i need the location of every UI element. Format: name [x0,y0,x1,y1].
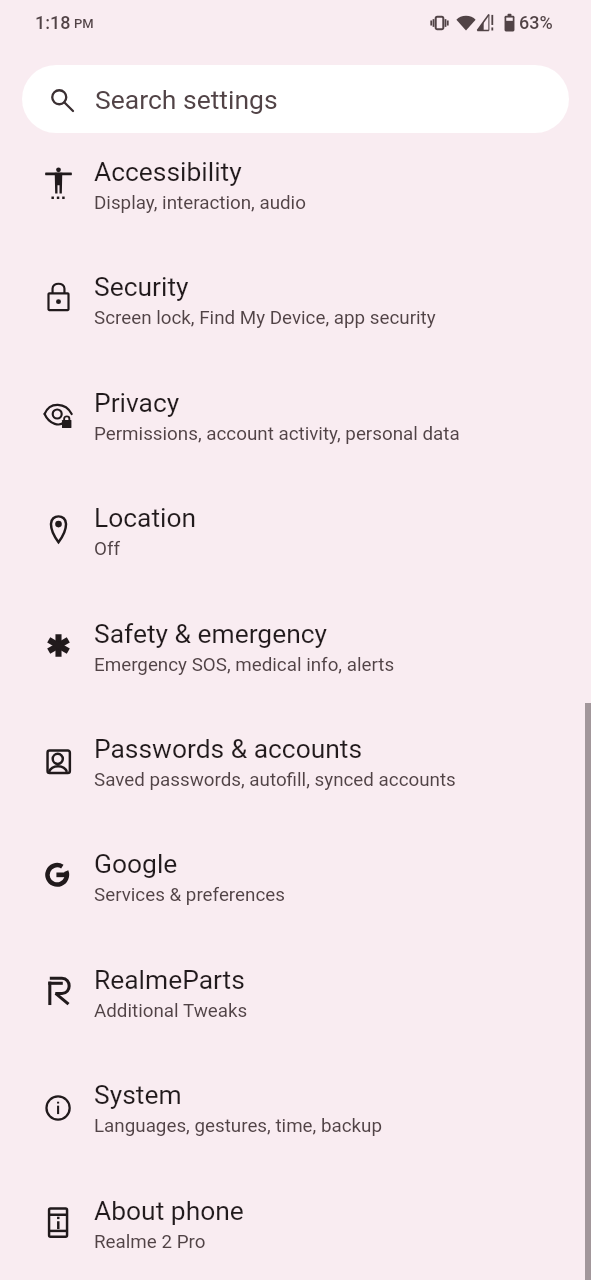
staticText: RealmeParts [94,965,245,996]
button[interactable]: Safety & emergency [0,590,591,705]
button[interactable]: Passwords & accounts [0,705,591,820]
staticText: Screen lock, Find My Device, app securit… [94,307,436,329]
staticText: Search settings [95,84,278,115]
button[interactable]: Accessibility [0,128,591,243]
button[interactable]: System [0,1051,591,1166]
staticText: 63% [519,12,553,33]
button[interactable]: Google [0,820,591,935]
button[interactable]: Location [0,474,591,589]
staticText: Realme 2 Pro [94,1231,206,1253]
staticText: Display, interaction, audio [94,192,306,214]
button[interactable]: About phone [0,1167,591,1280]
staticText: Additional Tweaks [94,1000,248,1022]
staticText: Accessibility [94,157,242,188]
staticText: Safety & emergency [94,619,328,650]
staticText: PM [74,16,94,31]
staticText: Privacy [94,388,180,419]
staticText: Location [94,503,197,534]
staticText: Saved passwords, autofill, synced accoun… [94,769,456,791]
staticText: 1:18 [35,12,71,33]
staticText: Off [94,538,121,560]
button[interactable]: Privacy [0,359,591,474]
staticText: Permissions, account activity, personal … [94,423,460,445]
staticText: Languages, gestures, time, backup [94,1115,383,1137]
staticText: Emergency SOS, medical info, alerts [94,654,395,676]
button[interactable]: Security [0,243,591,358]
button[interactable]: RealmeParts [0,936,591,1051]
staticText: Services & preferences [94,884,285,906]
staticText: Security [94,272,189,303]
staticText: Google [94,849,178,880]
staticText: System [94,1080,182,1111]
button[interactable]: Search settings [22,65,569,133]
staticText: Passwords & accounts [94,734,363,765]
staticText: About phone [94,1196,244,1227]
